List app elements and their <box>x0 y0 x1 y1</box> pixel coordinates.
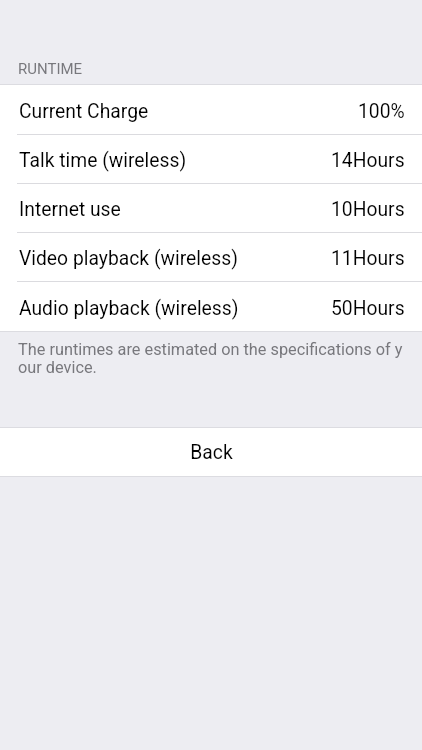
button[interactable]: Current Charge <box>0 85 422 134</box>
staticText: 14Hours <box>331 149 405 172</box>
button[interactable]: Internet use <box>0 183 422 232</box>
button[interactable]: Video playback (wireless) <box>0 232 422 281</box>
staticText: Video playback (wireless) <box>19 247 238 270</box>
staticText: 50Hours <box>331 297 405 320</box>
staticText: 10Hours <box>331 198 405 221</box>
button[interactable]: Talk time (wireless) <box>0 134 422 183</box>
button[interactable]: Audio playback (wireless) <box>0 281 422 331</box>
staticText: Audio playback (wireless) <box>19 297 239 320</box>
staticText: Internet use <box>19 198 121 221</box>
button[interactable]: Back <box>0 428 422 476</box>
staticText: Back <box>190 441 233 464</box>
staticText: 100% <box>358 100 405 123</box>
staticText: Current Charge <box>19 100 149 123</box>
staticText: RUNTIME <box>18 60 83 78</box>
staticText: 11Hours <box>331 247 405 270</box>
staticText: The runtimes are estimated on the specif… <box>18 340 403 377</box>
staticText: Talk time (wireless) <box>19 149 187 172</box>
